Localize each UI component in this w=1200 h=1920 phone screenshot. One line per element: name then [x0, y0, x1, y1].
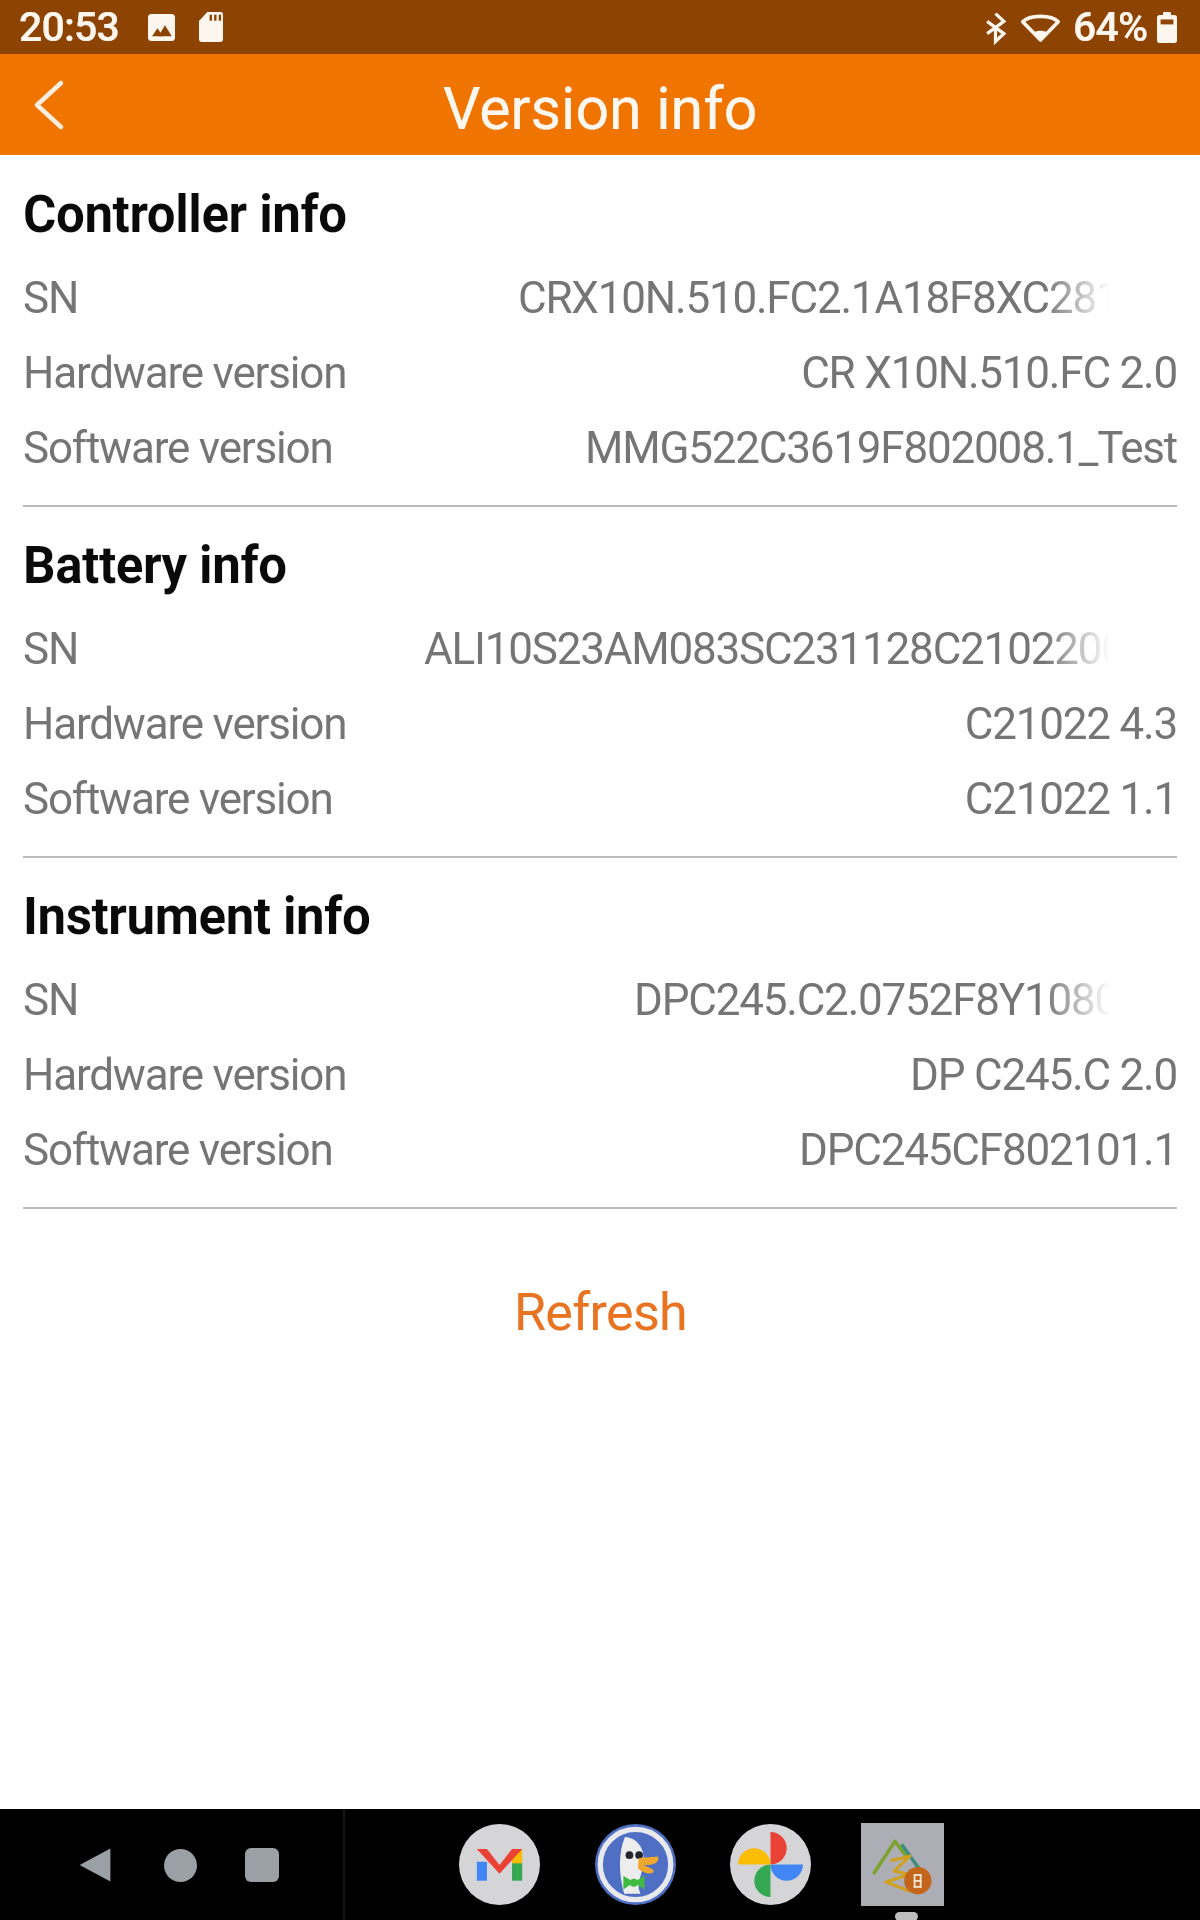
button[interactable]: Photos: [730, 1824, 811, 1905]
staticText: SN: [23, 623, 79, 675]
staticText: C21022 1.1: [964, 773, 1177, 825]
button[interactable]: Home: [135, 1820, 225, 1910]
staticText: Software version: [23, 773, 333, 825]
button[interactable]: Bitcoin app: [861, 1823, 944, 1906]
button[interactable]: DuckDuckGo: [595, 1824, 676, 1905]
staticText: Hardware version: [23, 347, 347, 399]
staticText: Hardware version: [23, 698, 347, 750]
staticText: MMG522C3619F802008.1_Test: [585, 422, 1177, 474]
staticText: 20:53: [19, 3, 120, 51]
staticText: DPC245.C2.0752F8Y10800FC: [634, 974, 1177, 1026]
staticText: Hardware version: [23, 1049, 347, 1101]
staticText: SN: [23, 974, 79, 1026]
staticText: DP C245.C 2.0: [910, 1049, 1177, 1101]
button[interactable]: SN: [0, 962, 1200, 1037]
button[interactable]: Hardware version: [0, 1037, 1200, 1112]
staticText: CRX10N.510.FC2.1A18F8XC2811FG: [518, 272, 1177, 324]
staticText: CR X10N.510.FC 2.0: [801, 347, 1177, 399]
staticText: C21022 4.3: [964, 698, 1177, 750]
button[interactable]: SN: [0, 260, 1200, 335]
button[interactable]: Back: [0, 55, 100, 155]
button[interactable]: Software version: [0, 410, 1200, 485]
button[interactable]: Back: [50, 1820, 140, 1910]
button[interactable]: Software version: [0, 1112, 1200, 1187]
staticText: Refresh: [514, 1282, 687, 1343]
button[interactable]: Hardware version: [0, 686, 1200, 761]
button[interactable]: Gmail: [459, 1824, 540, 1905]
staticText: SN: [23, 272, 79, 324]
staticText: Software version: [23, 1124, 333, 1176]
button[interactable]: SN: [0, 611, 1200, 686]
staticText: Instrument info: [23, 887, 371, 947]
staticText: Version info: [443, 74, 758, 143]
staticText: Software version: [23, 422, 333, 474]
button[interactable]: Refresh: [0, 1262, 1200, 1362]
button[interactable]: Hardware version: [0, 335, 1200, 410]
staticText: Battery info: [23, 536, 287, 596]
button[interactable]: Recents: [217, 1820, 307, 1910]
button[interactable]: Software version: [0, 761, 1200, 836]
staticText: 64%: [1073, 3, 1148, 51]
staticText: DPC245CF802101.1: [799, 1124, 1177, 1176]
staticText: Controller info: [23, 185, 347, 245]
staticText: ALI10S23AM083SC231128C2102200871: [424, 623, 1177, 675]
